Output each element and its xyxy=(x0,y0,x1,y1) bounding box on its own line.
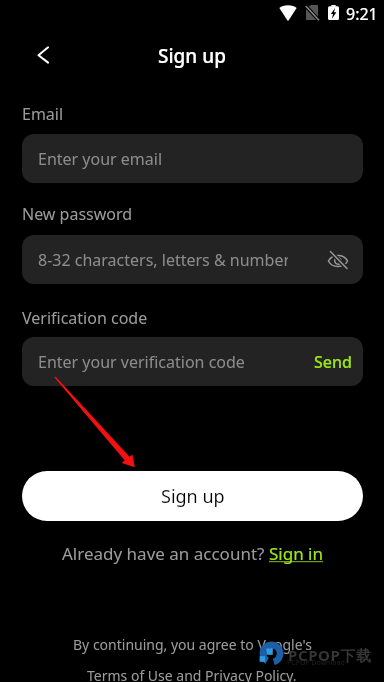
button[interactable]: Send xyxy=(314,351,352,373)
staticText: Sign in xyxy=(269,542,323,565)
staticText: Send xyxy=(314,351,352,373)
staticText: Enter your email xyxy=(38,148,163,170)
staticText: By continuing, you agree to Voogle's xyxy=(73,635,312,654)
staticText: Verification code xyxy=(22,307,148,329)
button[interactable]: Back xyxy=(27,43,53,69)
staticText: Terms of Use and Privacy Policy. xyxy=(87,666,297,682)
button[interactable]: Sign in xyxy=(269,542,323,565)
staticText: Enter your verification code xyxy=(38,351,245,373)
staticText: 9:21 xyxy=(346,3,378,25)
staticText: Sign up xyxy=(161,484,225,509)
button[interactable]: Show password xyxy=(328,251,348,269)
staticText: Sign up xyxy=(158,43,226,69)
staticText: New password xyxy=(22,203,133,225)
button[interactable]: 8-32 characters, letters & numbers xyxy=(22,235,363,284)
staticText: PCPOP Download xyxy=(287,658,345,668)
staticText: Already have an account? xyxy=(62,542,269,565)
button[interactable]: Enter your email xyxy=(22,134,363,183)
staticText: Email xyxy=(22,103,64,125)
button[interactable]: Enter your verification code xyxy=(22,337,363,386)
staticText: 8-32 characters, letters & numbers xyxy=(38,249,288,271)
staticText: PCPOP下载 xyxy=(288,645,372,665)
button[interactable]: Sign up xyxy=(22,471,363,521)
